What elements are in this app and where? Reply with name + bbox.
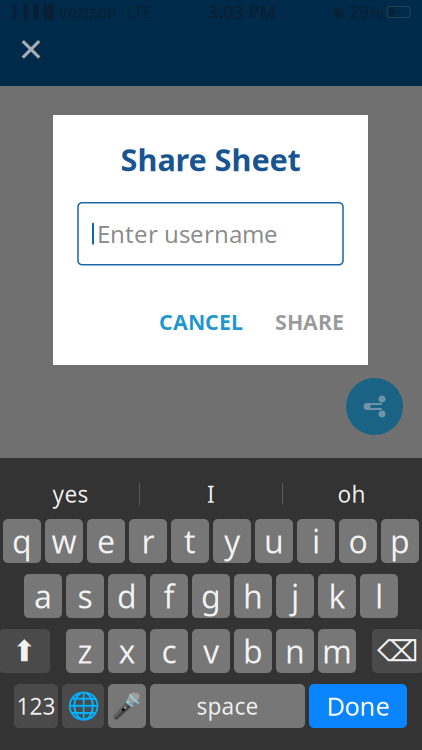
staticText: q <box>12 520 32 562</box>
staticText: 🌐 <box>66 691 99 721</box>
staticText: Verizon <box>58 0 118 23</box>
staticText: f <box>163 575 174 617</box>
staticText: s <box>77 575 92 617</box>
staticText: v <box>203 630 219 672</box>
staticText: e <box>97 520 115 562</box>
button[interactable]: p <box>381 519 419 563</box>
staticText: 123 <box>16 691 55 721</box>
staticText: y <box>224 520 240 562</box>
button[interactable]: f <box>150 574 188 618</box>
button[interactable]: v <box>192 629 230 673</box>
button[interactable]: q <box>3 519 41 563</box>
staticText: 3:03 PM <box>208 0 275 23</box>
button[interactable]: b <box>234 629 272 673</box>
button[interactable]: n <box>276 629 314 673</box>
button[interactable]: r <box>129 519 167 563</box>
button[interactable]: w <box>45 519 83 563</box>
staticText: Done <box>326 689 389 723</box>
button[interactable]: Done <box>309 684 407 728</box>
button[interactable]: Close <box>9 28 53 72</box>
staticText: k <box>328 575 345 617</box>
staticText: r <box>141 520 154 562</box>
staticText: w <box>51 520 76 562</box>
button[interactable]: l <box>360 574 398 618</box>
button[interactable]: h <box>234 574 272 618</box>
staticText: oh <box>337 479 365 509</box>
button[interactable]: c <box>150 629 188 673</box>
button[interactable]: e <box>87 519 125 563</box>
staticText: 29% <box>349 0 383 23</box>
button[interactable]: I <box>140 472 282 516</box>
staticText: j <box>291 575 299 617</box>
staticText: ◉ <box>332 4 345 20</box>
staticText: p <box>390 520 410 562</box>
staticText: Enter username <box>97 218 278 250</box>
staticText: ▎▍▌█ <box>14 4 54 19</box>
button[interactable]: z <box>66 629 104 673</box>
button[interactable]: d <box>108 574 146 618</box>
staticText: ⌫ <box>377 634 418 668</box>
staticText: CANCEL <box>159 308 243 336</box>
staticText: n <box>285 630 305 672</box>
staticText: x <box>118 630 135 672</box>
button[interactable]: Next keyboard <box>62 684 104 728</box>
staticText: Share Sheet <box>120 139 300 180</box>
staticText: t <box>184 520 196 562</box>
staticText: h <box>243 575 263 617</box>
staticText: ✕ <box>17 32 44 68</box>
button[interactable]: yes <box>2 472 139 516</box>
button[interactable]: space <box>150 684 305 728</box>
button[interactable]: y <box>213 519 251 563</box>
staticText: ⬆ <box>12 634 37 668</box>
staticText: SHARE <box>275 308 344 336</box>
staticText: b <box>243 630 263 672</box>
button[interactable]: 123 <box>14 684 58 728</box>
staticText: yes <box>52 479 88 509</box>
button[interactable]: Delete <box>372 629 422 673</box>
button[interactable]: CANCEL <box>149 300 253 344</box>
staticText: I <box>207 479 215 509</box>
staticText: i <box>312 520 320 562</box>
button[interactable]: oh <box>283 472 420 516</box>
button[interactable]: Shift <box>0 629 50 673</box>
staticText: d <box>117 575 137 617</box>
staticText: LTE <box>126 1 152 23</box>
button[interactable]: SHARE <box>265 300 354 344</box>
staticText: 🎤 <box>111 691 143 720</box>
button[interactable]: a <box>24 574 62 618</box>
staticText: c <box>161 630 176 672</box>
button[interactable]: t <box>171 519 209 563</box>
button[interactable]: s <box>66 574 104 618</box>
button[interactable]: g <box>192 574 230 618</box>
staticText: g <box>201 575 221 617</box>
button[interactable]: Share <box>346 378 403 435</box>
button[interactable]: o <box>339 519 377 563</box>
button[interactable]: k <box>318 574 356 618</box>
button[interactable]: i <box>297 519 335 563</box>
button[interactable]: j <box>276 574 314 618</box>
staticText: a <box>34 575 52 617</box>
staticText: m <box>322 630 352 672</box>
button[interactable]: x <box>108 629 146 673</box>
button[interactable]: Dictate <box>108 684 146 728</box>
staticText: z <box>77 630 92 672</box>
button[interactable]: u <box>255 519 293 563</box>
staticText: u <box>264 520 284 562</box>
staticText: l <box>375 575 383 617</box>
staticText: o <box>348 520 367 562</box>
staticText: space <box>196 691 258 721</box>
button[interactable]: m <box>318 629 356 673</box>
